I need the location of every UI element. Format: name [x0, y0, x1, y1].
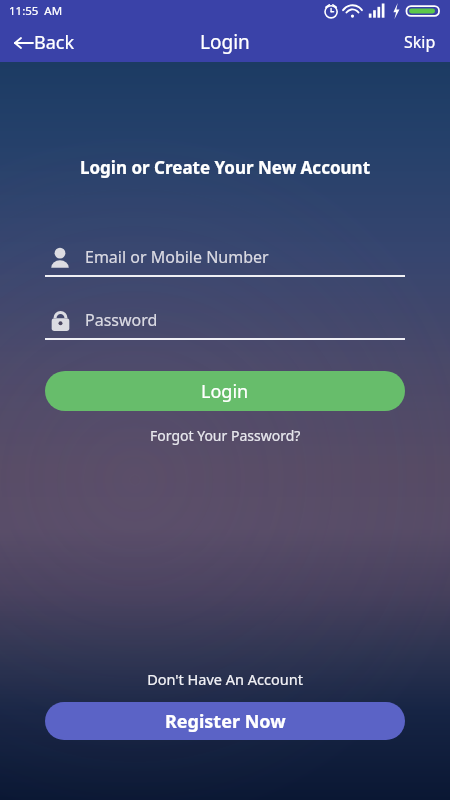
staticText: Login [201, 379, 249, 404]
staticText: Login [200, 29, 250, 55]
staticText: Back [34, 30, 75, 55]
staticText: Password [85, 309, 158, 331]
button[interactable]: Email or Mobile Number [45, 247, 405, 277]
staticText: Don't Have An Account [0, 669, 450, 689]
staticText: Forgot Your Password? [150, 426, 301, 445]
staticText: Register Now [165, 709, 286, 734]
staticText: Skip [404, 31, 436, 53]
button[interactable]: Login [45, 371, 405, 411]
button[interactable]: Password [45, 309, 405, 340]
staticText: Login or Create Your New Account [0, 156, 450, 179]
button[interactable]: Back [8, 26, 81, 59]
staticText: Email or Mobile Number [85, 246, 269, 268]
button[interactable]: Register Now [45, 702, 405, 740]
staticText: 11:55 AM [9, 3, 63, 19]
button[interactable]: Forgot Your Password? [142, 423, 309, 448]
button[interactable]: Skip [398, 27, 442, 57]
